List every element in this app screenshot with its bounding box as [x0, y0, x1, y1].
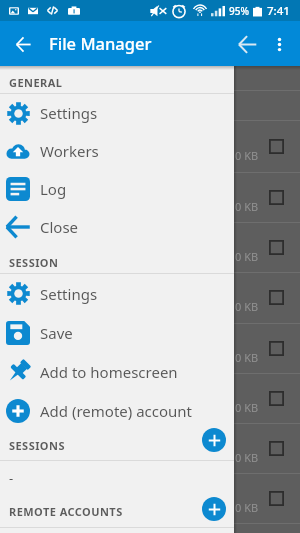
staticText: Close [40, 217, 79, 237]
staticText: File Manager [49, 32, 152, 54]
button[interactable]: Add (remote) account [0, 391, 234, 430]
button[interactable]: Log [0, 170, 234, 208]
button[interactable]: 0 KB [0, 373, 300, 423]
button[interactable]: 0 KB [0, 323, 300, 373]
staticText: Save [40, 323, 73, 343]
button[interactable]: 0 KB [0, 473, 300, 523]
staticText: REMOTE ACCOUNTS [9, 504, 123, 519]
staticText: Add to homescreen [40, 362, 178, 382]
staticText: 0 KB [235, 400, 259, 415]
button[interactable]: 0 KB [0, 222, 300, 273]
staticText: Workers [40, 141, 99, 161]
staticText: 0 KB [235, 500, 259, 515]
staticText: 0 KB [235, 199, 259, 214]
staticText: GENERAL [9, 75, 63, 90]
staticText: SESSIONS [9, 438, 65, 453]
staticText: Settings [40, 103, 98, 123]
staticText: SESSION [9, 255, 59, 270]
button[interactable]: Workers [0, 132, 234, 170]
staticText: Log [40, 179, 67, 199]
staticText: 0 KB [235, 350, 259, 365]
button[interactable]: 0 KB [0, 120, 300, 172]
staticText: 0 KB [235, 450, 259, 465]
staticText: 0 KB [235, 299, 259, 314]
staticText: 95% [229, 4, 249, 18]
button[interactable]: Add [202, 428, 226, 452]
button[interactable]: 0 KB [0, 423, 300, 473]
button[interactable]: Settings [0, 274, 234, 313]
button[interactable]: Save [0, 313, 234, 352]
button[interactable]: Add [202, 497, 226, 521]
button[interactable]: 0 KB [0, 272, 300, 323]
button[interactable]: More options [264, 29, 294, 59]
staticText: - [9, 469, 14, 487]
staticText: 7:41 [267, 3, 290, 19]
button[interactable]: Open navigation drawer [3, 24, 43, 64]
button[interactable]: Back [227, 24, 267, 64]
staticText: 0 KB [235, 148, 259, 163]
button[interactable]: Close [0, 208, 234, 246]
staticText: 0 KB [235, 249, 259, 264]
staticText: Add (remote) account [40, 401, 193, 421]
button[interactable]: Add to homescreen [0, 352, 234, 391]
button[interactable]: Settings [0, 94, 234, 132]
staticText: Settings [40, 284, 98, 304]
button[interactable]: 0 KB [0, 172, 300, 222]
